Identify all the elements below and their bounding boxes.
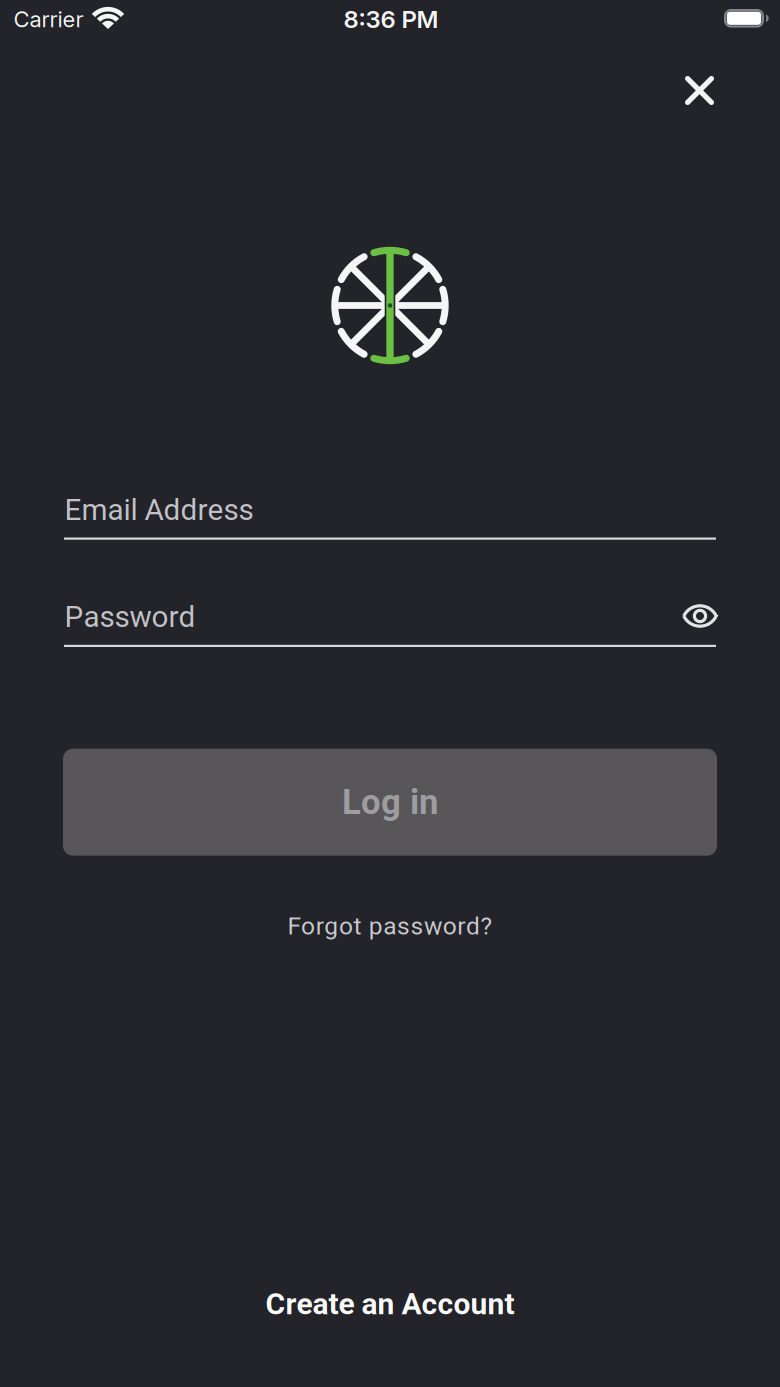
button[interactable]: Forgot password? — [287, 912, 492, 941]
button[interactable]: Create an Account — [265, 1286, 514, 1322]
staticText: Carrier — [13, 6, 83, 32]
staticText: Forgot password? — [287, 912, 492, 941]
button[interactable]: Log in — [63, 749, 717, 856]
staticText: 8:36 PM — [343, 5, 438, 34]
button[interactable]: Close — [667, 58, 731, 122]
staticText: Create an Account — [265, 1286, 514, 1322]
staticText: Password — [64, 599, 195, 634]
button[interactable]: Show password — [676, 596, 724, 636]
staticText: Log in — [342, 782, 438, 822]
staticText: Email Address — [64, 492, 253, 527]
